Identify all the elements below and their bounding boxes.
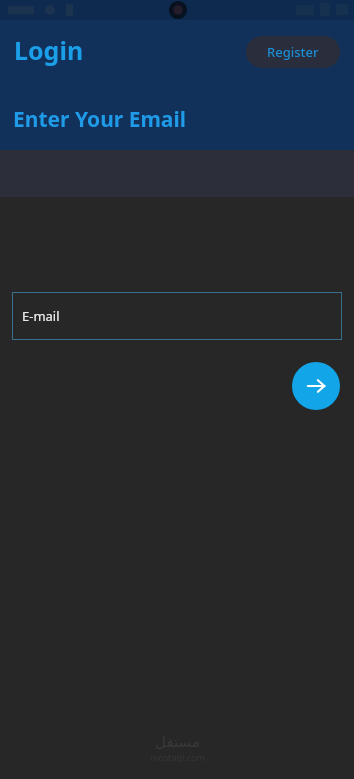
staticText: Enter Your Email [13, 105, 186, 134]
staticText: Login [14, 33, 84, 67]
staticText: مستقل [155, 733, 200, 750]
button[interactable]: E-mail [12, 292, 342, 340]
staticText: mostaql.com [150, 751, 205, 763]
staticText: Register [267, 43, 319, 61]
button[interactable]: Continue [292, 362, 340, 410]
button[interactable]: Register [246, 36, 340, 68]
staticText: E-mail [22, 307, 60, 325]
